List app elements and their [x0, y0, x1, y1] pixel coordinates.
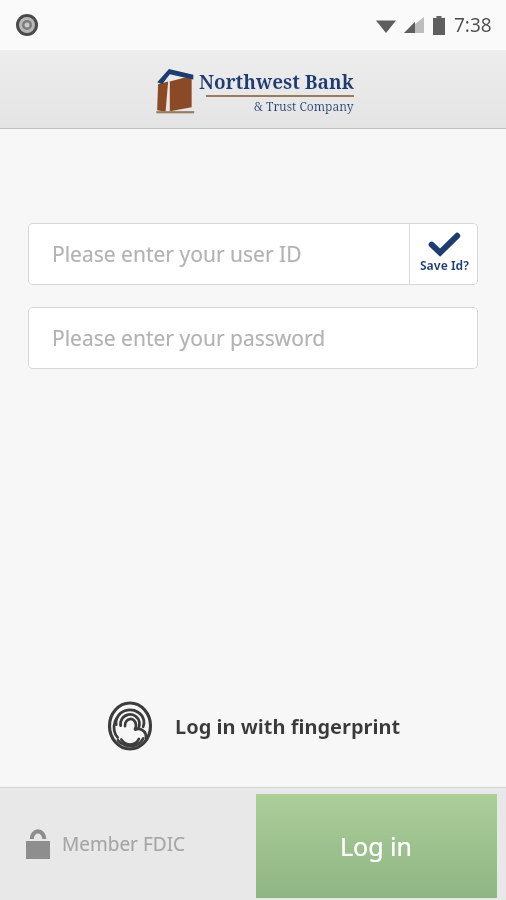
staticText: Northwest Bank	[199, 69, 354, 95]
staticText: Log in with fingerprint	[175, 713, 401, 740]
button[interactable]: Save Id	[410, 224, 478, 284]
button[interactable]: Log in	[256, 794, 497, 898]
staticText: Log in	[340, 829, 413, 863]
staticText: Member FDIC	[62, 831, 186, 857]
staticText: Please enter your password	[52, 324, 326, 353]
staticText: 7:38	[454, 12, 492, 38]
staticText: Please enter your user ID	[52, 240, 302, 269]
staticText: & Trust Company	[254, 98, 354, 114]
button[interactable]: Log in with fingerprint	[97, 695, 409, 757]
staticText: Save Id?	[420, 257, 469, 273]
button[interactable]: Please enter your user ID	[28, 223, 478, 285]
button[interactable]: Member FDIC	[26, 829, 186, 859]
button[interactable]: Please enter your password	[28, 307, 478, 369]
